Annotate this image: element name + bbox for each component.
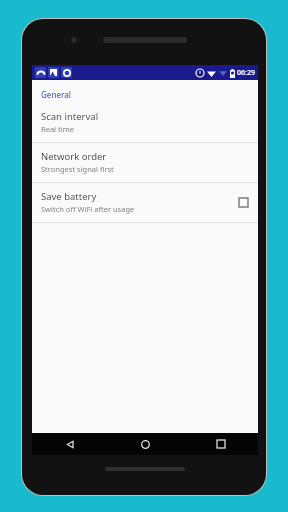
staticText: Save battery xyxy=(41,190,97,203)
staticText: Strongest signal first xyxy=(41,164,114,174)
staticText: Network order xyxy=(41,150,107,163)
button[interactable]: Scan interval xyxy=(32,103,258,142)
staticText: General xyxy=(41,89,71,100)
staticText: Real time xyxy=(41,124,74,134)
button[interactable]: Recent apps xyxy=(183,433,258,455)
button[interactable]: Home xyxy=(108,433,183,455)
staticText: Switch off WiFi after usage xyxy=(41,204,135,214)
button[interactable]: Back xyxy=(32,433,108,455)
other: Save battery toggle xyxy=(238,197,249,208)
button[interactable]: Save battery xyxy=(32,183,258,222)
staticText: Scan interval xyxy=(41,110,99,123)
staticText: 06:29 xyxy=(237,68,255,78)
button[interactable]: Network order xyxy=(32,143,258,182)
